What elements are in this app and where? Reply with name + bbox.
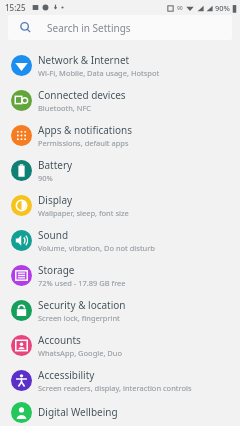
staticText: Wi-Fi, Mobile, Data usage, Hotspot (38, 68, 160, 78)
button[interactable]: Search in Settings (8, 15, 232, 40)
staticText: Accounts (38, 333, 81, 347)
staticText: Battery (38, 158, 73, 172)
button[interactable]: Apps & notifications (0, 118, 240, 153)
staticText: 90% (215, 3, 230, 13)
staticText: Screen readers, display, interaction con… (38, 383, 192, 393)
button[interactable]: Connected devices (0, 83, 240, 118)
staticText: Connected devices (38, 88, 126, 102)
staticText: WhatsApp, Google, Duo (38, 348, 123, 358)
staticText: Volume, vibration, Do not disturb (38, 243, 155, 253)
staticText: 15:25 (5, 2, 26, 13)
staticText: Permissions, default apps (38, 138, 129, 148)
button[interactable]: Display (0, 188, 240, 223)
staticText: Security & location (38, 298, 126, 312)
button[interactable]: Digital Wellbeing (0, 398, 240, 426)
staticText: Storage (38, 263, 75, 277)
staticText: Bluetooth, NFC (38, 103, 92, 113)
staticText: Digital Wellbeing (38, 405, 118, 419)
button[interactable]: Accounts (0, 328, 240, 363)
staticText: Sound (38, 228, 69, 242)
staticText: Display (38, 193, 73, 207)
staticText: Search in Settings (47, 21, 131, 35)
staticText: 90 (177, 5, 183, 12)
staticText: Wallpaper, sleep, font size (38, 208, 129, 218)
staticText: Accessibility (38, 368, 95, 382)
staticText: 90% (38, 173, 53, 183)
button[interactable]: Network & Internet (0, 48, 240, 83)
button[interactable]: Battery (0, 153, 240, 188)
button[interactable]: Sound (0, 223, 240, 258)
button[interactable]: Accessibility (0, 363, 240, 398)
staticText: Apps & notifications (38, 123, 133, 137)
button[interactable]: Security & location (0, 293, 240, 328)
staticText: Screen lock, fingerprint (38, 313, 120, 323)
button[interactable]: Storage (0, 258, 240, 293)
staticText: 72% used - 17.89 GB free (38, 278, 126, 288)
staticText: Network & Internet (38, 53, 130, 67)
